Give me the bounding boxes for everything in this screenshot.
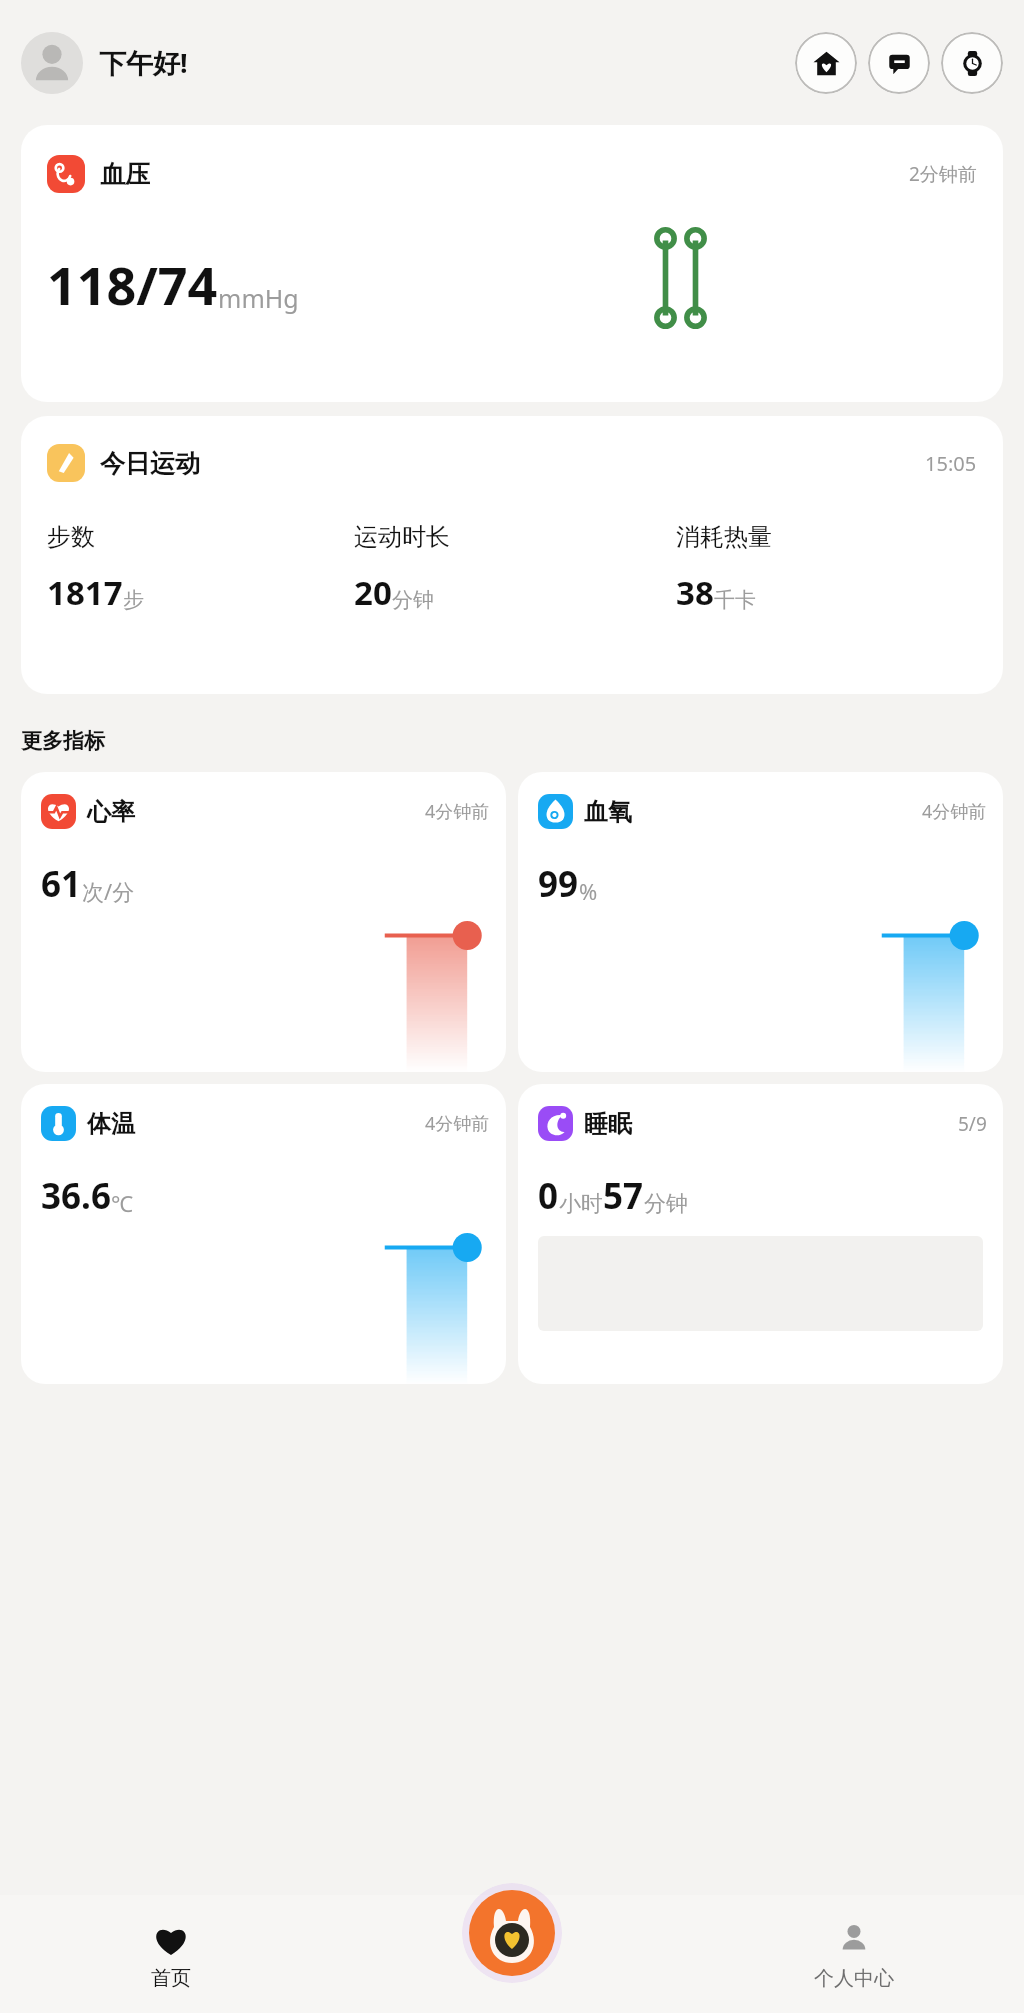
staticText: 下午好!	[99, 44, 188, 81]
staticText: 血氧	[584, 797, 632, 827]
staticText: 99	[538, 860, 579, 908]
button[interactable]: 血压	[21, 125, 1003, 402]
staticText: 今日运动	[100, 448, 200, 479]
button[interactable]: 个人中心	[683, 1895, 1024, 2013]
staticText: 血压	[100, 159, 150, 190]
staticText: 4分钟前	[425, 799, 490, 824]
staticText: 步数	[47, 522, 95, 552]
button[interactable]: 血氧	[518, 772, 1003, 1072]
button[interactable]: 心率	[21, 772, 506, 1072]
staticText: 38	[676, 570, 714, 615]
button[interactable]: 首页	[0, 1895, 342, 2013]
staticText: 2分钟前	[909, 161, 977, 187]
staticText: 体温	[87, 1109, 135, 1139]
staticText: 61	[41, 860, 82, 908]
button[interactable]: Messages	[868, 32, 930, 94]
staticText: mmHg	[218, 281, 299, 315]
button[interactable]: 今日运动	[21, 416, 1003, 694]
staticText: 15:05	[925, 450, 977, 477]
staticText: 首页	[151, 1966, 191, 1991]
staticText: 4分钟前	[922, 799, 987, 824]
button[interactable]: Home	[795, 32, 857, 94]
staticText: 次/分	[82, 876, 135, 906]
staticText: 消耗热量	[676, 522, 772, 552]
staticText: 118/74	[47, 249, 218, 320]
button[interactable]: 体温	[21, 1084, 506, 1384]
staticText: 个人中心	[814, 1966, 894, 1991]
staticText: 57	[603, 1172, 644, 1220]
staticText: 步	[123, 587, 144, 613]
staticText: 4分钟前	[425, 1111, 490, 1136]
staticText: %	[579, 876, 598, 906]
staticText: 0	[538, 1172, 559, 1220]
button[interactable]: Profile	[21, 32, 83, 94]
staticText: 1817	[47, 570, 123, 615]
staticText: ℃	[111, 1188, 133, 1218]
staticText: 5/9	[958, 1111, 987, 1137]
button[interactable]: Watch	[941, 32, 1003, 94]
button[interactable]: Assistant	[462, 1883, 562, 1983]
staticText: 睡眠	[584, 1109, 632, 1139]
staticText: 心率	[87, 797, 135, 827]
button[interactable]: 睡眠	[518, 1084, 1003, 1384]
staticText: 36.6	[41, 1172, 111, 1220]
staticText: 20	[354, 570, 392, 615]
staticText: 更多指标	[21, 728, 105, 754]
staticText: 分钟	[392, 587, 434, 613]
staticText: 千卡	[714, 587, 756, 613]
staticText: 分钟	[644, 1190, 688, 1218]
staticText: 小时	[559, 1190, 603, 1218]
staticText: 运动时长	[354, 522, 450, 552]
